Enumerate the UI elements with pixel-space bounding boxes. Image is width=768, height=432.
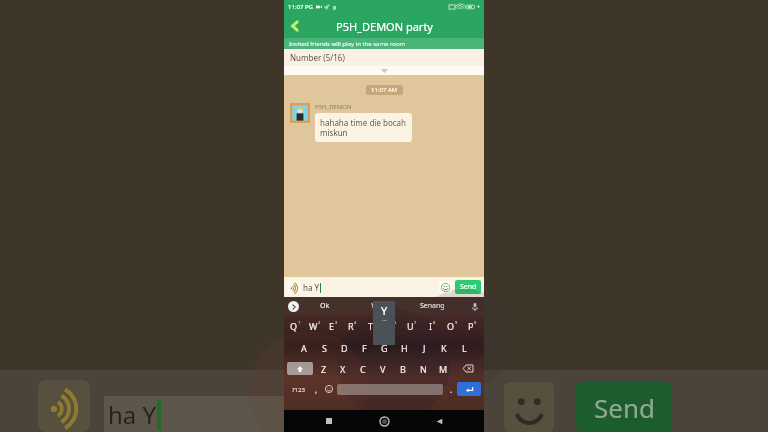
staticText: Y xyxy=(381,303,388,318)
button[interactable]: I xyxy=(422,319,442,333)
staticText: Ya xyxy=(371,301,379,311)
staticText: R xyxy=(348,320,354,332)
staticText: P5H_DEMON xyxy=(315,103,352,111)
staticText: 11:07 AM xyxy=(371,86,398,94)
button[interactable]: N xyxy=(413,362,433,375)
staticText: , xyxy=(315,384,318,395)
button[interactable]: Backspace xyxy=(453,362,482,375)
staticText: 1 xyxy=(298,320,301,325)
staticText: U xyxy=(407,320,414,332)
staticText: 9 xyxy=(455,320,458,325)
button[interactable]: F xyxy=(354,341,374,354)
button[interactable]: K xyxy=(434,341,454,354)
staticText: 0 xyxy=(474,320,477,325)
staticText: G xyxy=(381,342,388,354)
button[interactable]: Voice input xyxy=(469,301,480,312)
staticText: . xyxy=(450,384,453,395)
button[interactable]: Enter xyxy=(457,382,481,396)
button[interactable]: Y xyxy=(382,319,402,333)
staticText: + xyxy=(477,4,480,11)
button[interactable]: U xyxy=(402,319,422,333)
staticText: 3 xyxy=(335,320,338,325)
button[interactable]: Comma xyxy=(309,383,323,396)
button[interactable]: Emoji xyxy=(439,281,452,294)
staticText: Number (5/16) xyxy=(290,52,345,63)
staticText: F xyxy=(362,342,367,354)
button[interactable]: R xyxy=(343,319,362,333)
button[interactable]: P xyxy=(462,319,482,333)
button[interactable]: V xyxy=(373,362,393,375)
staticText: H xyxy=(401,342,408,354)
button[interactable]: Q xyxy=(286,319,305,333)
button[interactable]: ha Y xyxy=(303,282,439,293)
staticText: V xyxy=(380,363,386,375)
staticText: 7 xyxy=(414,320,417,325)
staticText: L xyxy=(462,342,467,354)
button[interactable]: A xyxy=(294,341,314,354)
staticText: S xyxy=(322,342,327,354)
button[interactable]: G xyxy=(374,341,394,354)
staticText: Invited friends will play in the same ro… xyxy=(289,40,406,48)
staticText: B xyxy=(400,363,406,375)
staticText: X xyxy=(340,363,346,375)
button[interactable]: S xyxy=(314,341,334,354)
button[interactable]: Voice xyxy=(287,281,300,294)
button[interactable]: Z xyxy=(314,362,333,375)
staticText: Senang xyxy=(420,301,445,311)
button[interactable]: O xyxy=(442,319,462,333)
staticText: Send xyxy=(594,390,655,425)
button[interactable]: D xyxy=(334,341,354,354)
staticText: E xyxy=(329,320,335,332)
button[interactable]: Ya xyxy=(369,301,381,311)
button[interactable]: T xyxy=(362,319,382,333)
button[interactable]: L xyxy=(454,341,474,354)
staticText: J xyxy=(423,342,426,354)
button[interactable]: Shift xyxy=(287,362,313,375)
button[interactable]: Send xyxy=(455,280,481,294)
staticText: ha Y xyxy=(303,282,320,293)
button[interactable]: ?123 xyxy=(287,383,309,396)
button[interactable]: Senang xyxy=(418,301,447,311)
staticText: 8 xyxy=(433,320,436,325)
button[interactable]: Back xyxy=(429,411,449,431)
staticText: M xyxy=(439,363,448,375)
button[interactable]: C xyxy=(353,362,373,375)
staticText: K xyxy=(441,342,447,354)
button[interactable]: Period xyxy=(445,383,457,396)
staticText: N xyxy=(420,363,427,375)
staticText: ha Y xyxy=(108,398,157,431)
staticText: T xyxy=(368,320,374,332)
staticText: hahaha time die bocah miskun xyxy=(320,117,407,138)
button[interactable]: M xyxy=(433,362,453,375)
button[interactable]: X xyxy=(333,362,353,375)
button[interactable]: Emoji keyboard xyxy=(323,383,335,395)
staticText: 4 xyxy=(354,320,357,325)
button[interactable]: Ok xyxy=(318,301,332,311)
button[interactable]: H xyxy=(394,341,414,354)
staticText: Ok xyxy=(320,301,330,311)
staticText: I xyxy=(429,320,433,332)
button[interactable]: W xyxy=(305,319,324,333)
button[interactable]: Back xyxy=(284,14,306,38)
staticText: Q xyxy=(290,320,298,332)
button[interactable]: Expand xyxy=(284,66,484,75)
staticText: D xyxy=(341,342,348,354)
staticText: A xyxy=(301,342,307,354)
button[interactable]: hahaha time die bocah miskun xyxy=(320,117,407,138)
button[interactable]: Avatar xyxy=(290,103,310,123)
button[interactable]: Home xyxy=(374,411,394,431)
button[interactable]: B xyxy=(393,362,413,375)
staticText: P xyxy=(468,320,474,332)
button[interactable]: Number (5/16) xyxy=(284,49,484,66)
staticText: W xyxy=(309,320,318,332)
button[interactable]: More suggestions xyxy=(288,301,299,312)
staticText: 6 xyxy=(394,320,397,325)
staticText: ... xyxy=(382,315,387,323)
staticText: P5H_DEMON party xyxy=(336,19,433,34)
button[interactable]: E xyxy=(324,319,343,333)
button[interactable]: Recents xyxy=(319,411,339,431)
button[interactable]: J xyxy=(414,341,434,354)
